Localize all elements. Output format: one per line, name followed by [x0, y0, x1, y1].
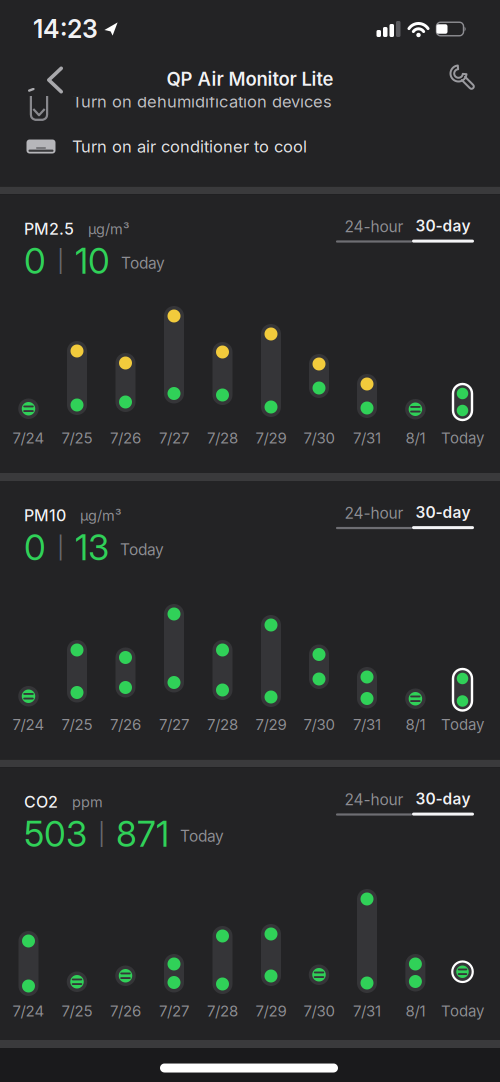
staticText: QP Air Monitor Lite	[166, 68, 333, 90]
staticText: 8/1	[405, 715, 425, 733]
staticText: 7/26	[110, 715, 141, 733]
staticText: 7/29	[255, 715, 286, 733]
button[interactable]: Back	[39, 58, 71, 101]
button[interactable]: Turn on dehumidification devices	[28, 91, 480, 111]
button[interactable]: Turn on air conditioner to cool	[28, 136, 480, 156]
staticText: µg/m³	[88, 220, 129, 238]
staticText: Today	[441, 429, 484, 447]
staticText: 13	[75, 526, 109, 569]
staticText: 0	[24, 240, 46, 282]
staticText: |	[57, 534, 64, 561]
button[interactable]: 24-hour	[336, 217, 412, 243]
staticText: 7/30	[303, 429, 334, 447]
staticText: ppm	[72, 793, 103, 811]
staticText: 7/30	[303, 1002, 334, 1020]
staticText: Today	[441, 1002, 484, 1020]
staticText: Today	[120, 540, 164, 559]
staticText: 24-hour	[344, 504, 403, 522]
staticText: 7/31	[353, 715, 381, 733]
button[interactable]: 30-day	[412, 789, 474, 816]
staticText: 7/25	[61, 1002, 92, 1020]
staticText: 7/25	[61, 429, 92, 447]
staticText: 7/28	[207, 429, 238, 447]
staticText: Today	[180, 827, 224, 845]
staticText: 503	[24, 813, 87, 855]
button[interactable]: 24-hour	[336, 504, 412, 529]
staticText: 7/31	[353, 429, 381, 447]
staticText: 30-day	[415, 789, 470, 808]
staticText: 24-hour	[344, 790, 403, 809]
staticText: 30-day	[415, 503, 470, 522]
staticText: 24-hour	[344, 217, 403, 236]
staticText: PM2.5	[24, 219, 74, 239]
staticText: 0	[24, 526, 46, 569]
staticText: Today	[441, 715, 484, 733]
button[interactable]: 24-hour	[336, 790, 412, 816]
staticText: 7/25	[61, 715, 92, 733]
staticText: 30-day	[415, 216, 470, 235]
staticText: 7/27	[159, 715, 189, 733]
staticText: 10	[75, 240, 110, 282]
staticText: Today	[121, 254, 165, 272]
staticText: 871	[116, 813, 169, 855]
staticText: 8/1	[405, 1002, 425, 1020]
staticText: Turn on dehumidification devices	[72, 91, 332, 111]
button[interactable]: 30-day	[412, 503, 474, 529]
staticText: 7/24	[12, 1002, 44, 1020]
staticText: Turn on air conditioner to cool	[72, 136, 307, 156]
button[interactable]: Settings	[448, 63, 478, 93]
staticText: 8/1	[405, 429, 425, 447]
staticText: CO2	[24, 792, 58, 812]
staticText: 7/30	[303, 715, 334, 733]
staticText: 7/24	[12, 429, 44, 447]
button[interactable]: 30-day	[412, 216, 474, 243]
staticText: 7/26	[110, 429, 141, 447]
staticText: |	[98, 821, 105, 847]
staticText: 7/31	[353, 1002, 381, 1020]
staticText: 7/24	[12, 715, 44, 733]
staticText: 7/26	[110, 1002, 141, 1020]
staticText: 7/28	[207, 1002, 238, 1020]
staticText: 7/29	[255, 429, 286, 447]
staticText: 7/27	[159, 1002, 189, 1020]
staticText: 14:23	[33, 14, 98, 44]
staticText: |	[57, 248, 64, 274]
staticText: PM10	[24, 506, 66, 525]
staticText: 7/28	[207, 715, 238, 733]
staticText: 7/29	[255, 1002, 286, 1020]
staticText: 7/27	[159, 429, 189, 447]
staticText: µg/m³	[80, 507, 121, 524]
